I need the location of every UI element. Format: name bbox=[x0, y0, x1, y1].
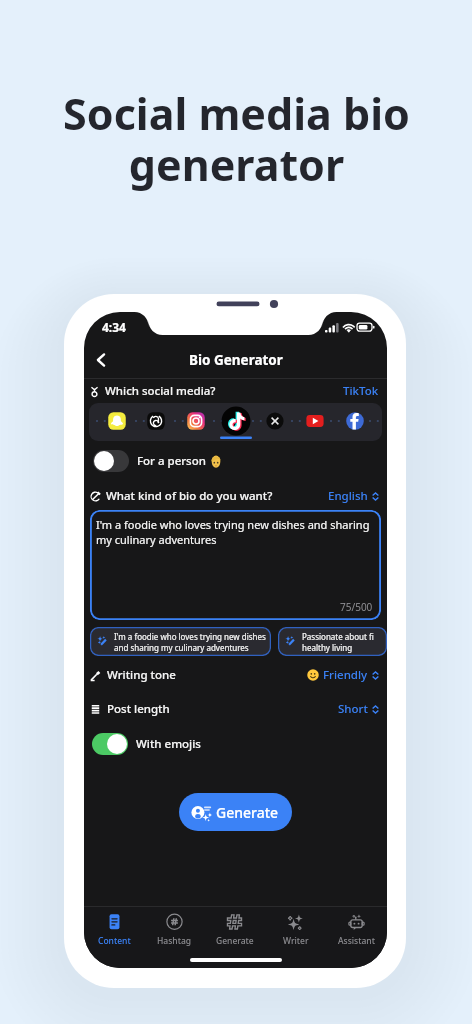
button[interactable]: Generate bbox=[204, 907, 265, 953]
button[interactable]: I'm a foodie who loves trying new dishes… bbox=[90, 510, 381, 620]
button[interactable]: English bbox=[328, 488, 380, 504]
staticText: Which social media? bbox=[105, 383, 216, 399]
staticText: Generate bbox=[216, 935, 254, 947]
staticText: 75/500 bbox=[340, 600, 373, 614]
staticText: Hashtag bbox=[157, 935, 192, 947]
button[interactable]: Passionate about fi healthy living bbox=[278, 627, 387, 656]
staticText: Writing tone bbox=[107, 667, 176, 683]
button[interactable]: Writing tone bbox=[84, 658, 387, 692]
staticText: Friendly bbox=[323, 667, 368, 683]
staticText: Generate bbox=[216, 803, 279, 822]
button[interactable]: Back bbox=[84, 342, 118, 378]
button[interactable]: I'm a foodie who loves trying new dishes… bbox=[90, 627, 271, 656]
staticText: Writer bbox=[283, 935, 309, 947]
staticText: I'm a foodie who loves trying new dishes… bbox=[114, 631, 266, 653]
button[interactable]: With emojis bbox=[92, 726, 387, 762]
button[interactable]: Hashtag bbox=[144, 907, 204, 953]
button[interactable]: Generate bbox=[179, 793, 292, 831]
button[interactable] bbox=[89, 403, 382, 441]
staticText: I'm a foodie who loves trying new dishes… bbox=[96, 517, 370, 547]
button[interactable]: TikTok bbox=[343, 383, 379, 399]
staticText: Assistant bbox=[338, 935, 375, 947]
button[interactable]: Post length bbox=[84, 692, 387, 726]
staticText: Bio Generator bbox=[189, 351, 283, 369]
staticText: With emojis bbox=[136, 736, 201, 752]
staticText: What kind of bio do you want? bbox=[106, 488, 273, 504]
staticText: Content bbox=[98, 935, 131, 947]
staticText: For a person bbox=[137, 453, 206, 469]
staticText: Short bbox=[338, 701, 368, 717]
button[interactable]: Content bbox=[84, 907, 144, 953]
button[interactable]: Writer bbox=[265, 907, 326, 953]
button[interactable]: Assistant bbox=[326, 907, 387, 953]
staticText: Post length bbox=[107, 701, 170, 717]
staticText: 4:34 bbox=[102, 319, 126, 335]
staticText: English bbox=[328, 488, 368, 504]
staticText: Social media bio generator bbox=[63, 84, 410, 194]
staticText: Passionate about fi healthy living bbox=[302, 631, 374, 653]
button[interactable]: For a person bbox=[93, 441, 387, 481]
